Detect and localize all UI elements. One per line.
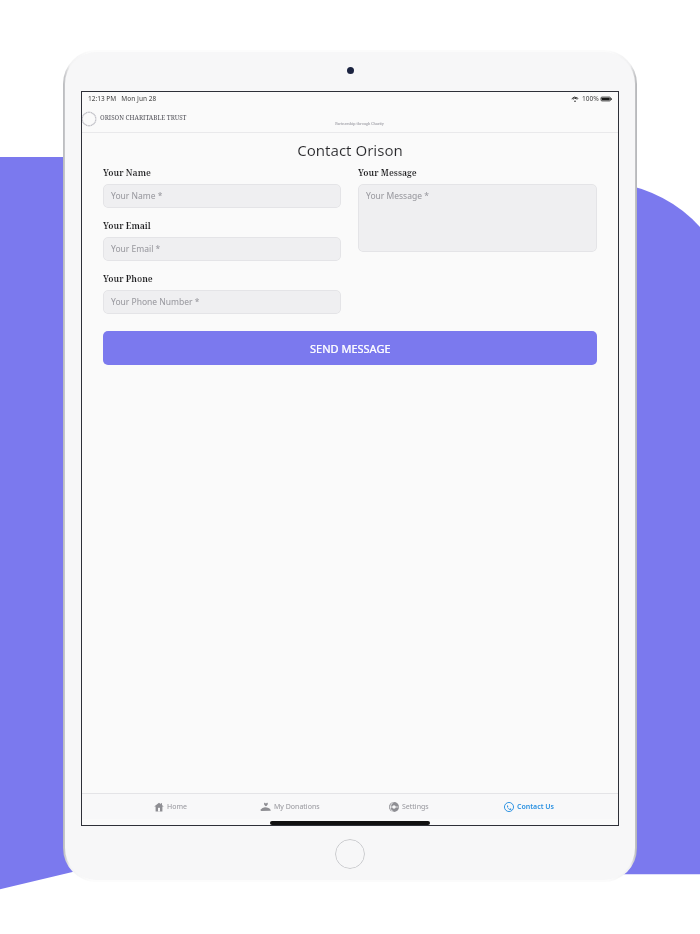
staticText: 12:13 PM Mon Jun 28	[88, 94, 157, 103]
staticText: Your Message *	[366, 190, 429, 202]
button[interactable]: Your Message *	[358, 184, 597, 252]
staticText: Your Email	[103, 220, 151, 232]
staticText: SEND MESSAGE	[310, 341, 391, 356]
button[interactable]: Your Name *	[103, 184, 341, 208]
staticText: Your Name *	[111, 190, 163, 202]
staticText: Home	[167, 802, 187, 812]
staticText: Contact Orison	[297, 140, 403, 160]
staticText: Your Name	[103, 167, 151, 179]
staticText: Your Email *	[111, 243, 161, 255]
button[interactable]: Contact Us	[469, 802, 589, 812]
staticText: Settings	[402, 802, 429, 812]
staticText: ORISON CHARITABLE TRUST	[100, 113, 187, 121]
staticText: 100%	[582, 94, 599, 103]
staticText: Your Phone Number *	[111, 296, 200, 308]
button[interactable]: SEND MESSAGE	[103, 331, 597, 365]
staticText: Partnership through Charity	[100, 121, 619, 126]
staticText: Your Phone	[103, 273, 153, 285]
button[interactable]: My Donations	[230, 801, 349, 812]
button[interactable]: Settings	[349, 802, 469, 812]
button[interactable]: Your Phone Number *	[103, 290, 341, 314]
button[interactable]: Home	[111, 802, 230, 812]
staticText: Contact Us	[517, 802, 555, 812]
staticText: My Donations	[274, 802, 320, 812]
button[interactable]: Your Email *	[103, 237, 341, 261]
staticText: Your Message	[358, 167, 417, 179]
